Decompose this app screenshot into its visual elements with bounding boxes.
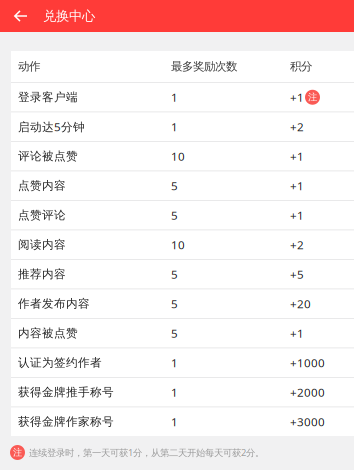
staticText: +1 <box>290 178 304 194</box>
staticText: 认证为签约作者 <box>18 355 102 370</box>
staticText: 1 <box>171 355 178 371</box>
staticText: +1 <box>290 89 304 105</box>
staticText: 作者发布内容 <box>18 296 90 311</box>
staticText: +1 <box>290 325 304 341</box>
staticText: 点赞内容 <box>18 178 66 193</box>
staticText: 评论被点赞 <box>18 149 78 163</box>
staticText: +1 <box>290 207 304 223</box>
staticText: 动作 <box>18 59 40 74</box>
staticText: 注 <box>13 447 22 458</box>
staticText: 推荐内容 <box>18 267 66 281</box>
staticText: +20 <box>290 296 311 312</box>
staticText: 10 <box>171 148 185 164</box>
staticText: 5 <box>171 178 178 194</box>
staticText: +2 <box>290 237 304 253</box>
staticText: 1 <box>171 384 178 400</box>
staticText: +1 <box>290 148 304 164</box>
staticText: 登录客户端 <box>18 90 78 104</box>
staticText: 阅读内容 <box>18 237 66 252</box>
staticText: 点赞评论 <box>18 208 66 222</box>
staticText: 1 <box>171 89 178 105</box>
staticText: 启动达5分钟 <box>18 119 85 135</box>
staticText: 1 <box>171 414 178 430</box>
staticText: 连续登录时，第一天可获1分，从第二天开始每天可获2分。 <box>29 446 264 459</box>
staticText: 注 <box>308 91 317 103</box>
staticText: 1 <box>171 119 178 135</box>
staticText: 获得金牌推手称号 <box>18 385 114 399</box>
staticText: +2000 <box>290 384 325 400</box>
staticText: 兑换中心 <box>43 8 95 24</box>
staticText: 5 <box>171 266 178 282</box>
staticText: +2 <box>290 119 304 135</box>
staticText: 积分 <box>290 59 312 74</box>
staticText: 5 <box>171 207 178 223</box>
staticText: 内容被点赞 <box>18 326 78 340</box>
button[interactable]: 返回 <box>0 0 43 32</box>
staticText: 获得金牌作家称号 <box>18 414 114 429</box>
staticText: +5 <box>290 266 304 282</box>
staticText: +3000 <box>290 414 325 430</box>
staticText: 最多奖励次数 <box>171 59 237 74</box>
staticText: 10 <box>171 237 185 253</box>
staticText: 5 <box>171 325 178 341</box>
staticText: +1000 <box>290 355 325 371</box>
staticText: 5 <box>171 296 178 312</box>
